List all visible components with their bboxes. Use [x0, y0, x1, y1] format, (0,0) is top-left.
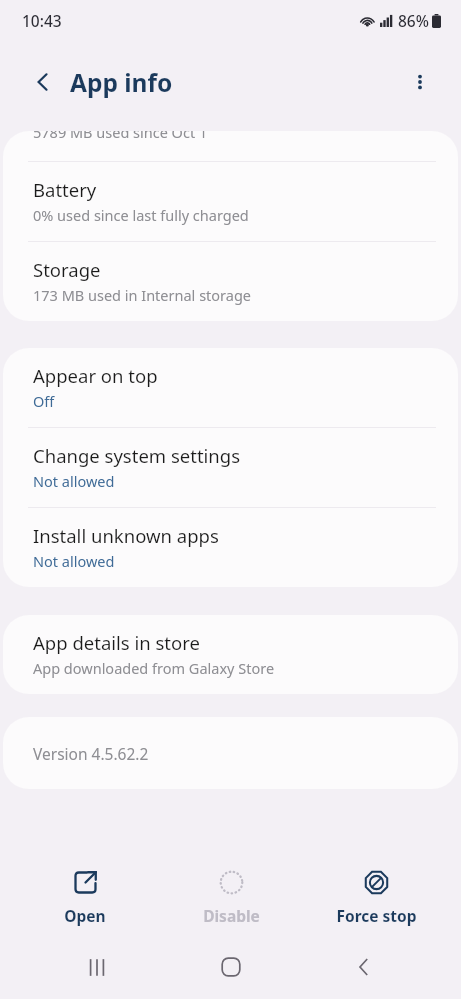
- staticText: App details in store: [33, 630, 200, 655]
- staticText: 0% used since last fully charged: [33, 205, 249, 225]
- button[interactable]: 5789 MB used since Oct 1: [3, 131, 458, 161]
- staticText: Force stop: [336, 905, 417, 926]
- button[interactable]: Storage: [3, 242, 458, 321]
- button[interactable]: Version 4.5.62.2: [3, 717, 458, 789]
- button[interactable]: Recent apps: [61, 935, 133, 999]
- button[interactable]: Install unknown apps: [3, 508, 458, 587]
- staticText: Storage: [33, 257, 101, 282]
- staticText: Not allowed: [33, 471, 115, 491]
- staticText: Off: [33, 391, 55, 411]
- staticText: Open: [64, 905, 106, 926]
- button[interactable]: Disable: [171, 865, 291, 930]
- button[interactable]: Change system settings: [3, 428, 458, 507]
- button[interactable]: Force stop: [316, 865, 436, 930]
- button[interactable]: Back: [20, 59, 66, 105]
- staticText: 5789 MB used since Oct 1: [33, 131, 208, 142]
- staticText: App info: [70, 66, 173, 99]
- staticText: Battery: [33, 177, 97, 202]
- staticText: Appear on top: [33, 363, 158, 388]
- button[interactable]: Back: [328, 935, 400, 999]
- button[interactable]: Open: [25, 865, 145, 930]
- staticText: Change system settings: [33, 443, 241, 468]
- button[interactable]: App details in store: [3, 615, 458, 694]
- button[interactable]: Battery: [3, 162, 458, 241]
- button[interactable]: Appear on top: [3, 348, 458, 427]
- staticText: App downloaded from Galaxy Store: [33, 658, 275, 678]
- staticText: Install unknown apps: [33, 523, 219, 548]
- button[interactable]: Home: [195, 935, 267, 999]
- staticText: 10:43: [22, 10, 62, 31]
- staticText: 173 MB used in Internal storage: [33, 285, 252, 305]
- staticText: Version 4.5.62.2: [33, 743, 149, 764]
- staticText: Not allowed: [33, 551, 115, 571]
- button[interactable]: More options: [397, 59, 443, 105]
- staticText: Disable: [203, 905, 260, 926]
- staticText: 86%: [398, 10, 429, 31]
